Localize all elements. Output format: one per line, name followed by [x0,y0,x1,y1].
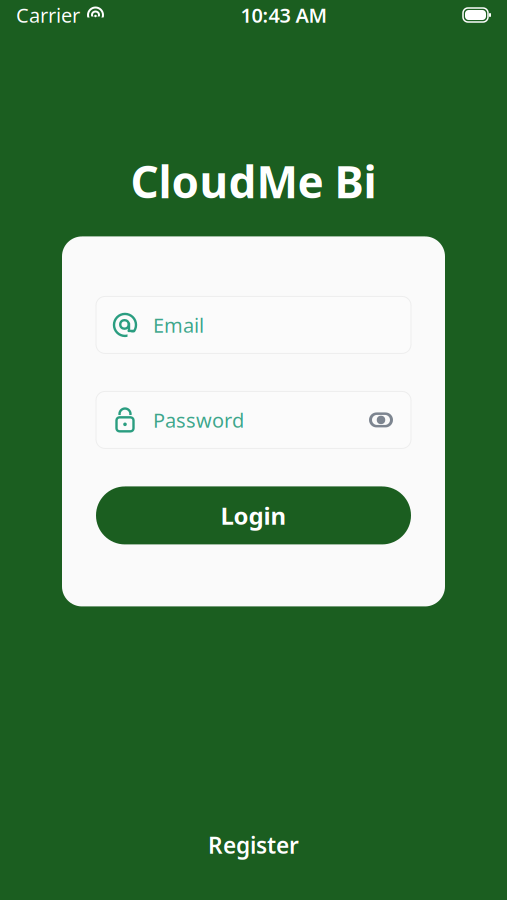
button[interactable]: Password [96,391,411,448]
staticText: Password [153,407,244,433]
button[interactable]: Register [180,820,327,870]
staticText: Register [208,830,299,860]
staticText: 10:43 AM [240,2,327,28]
staticText: Login [220,499,286,531]
staticText: Carrier [16,2,80,28]
button[interactable]: Email [96,296,411,353]
staticText: Email [153,312,204,338]
staticText: CloudMe Bi [130,152,376,210]
button[interactable]: Login [96,486,411,544]
